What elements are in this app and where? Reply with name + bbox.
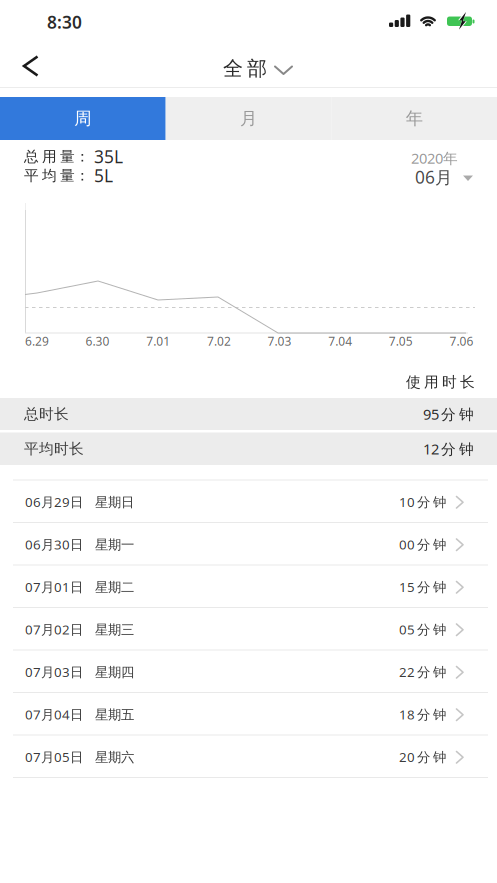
staticText: 平 均 量：	[24, 166, 94, 184]
staticText: 7.06	[449, 333, 473, 349]
staticText: 07月01日 星期二	[25, 578, 134, 596]
staticText: 使 用 时 长	[406, 373, 475, 391]
staticText: 35L	[94, 145, 123, 168]
staticText: 07月04日 星期五	[25, 705, 134, 723]
button[interactable]: 月	[166, 97, 331, 140]
staticText: 总时长	[24, 405, 69, 423]
staticText: 12 分 钟	[423, 439, 474, 458]
staticText: 7.05	[389, 333, 413, 349]
staticText: 2020年	[411, 148, 458, 168]
staticText: 总 用 量：	[24, 147, 94, 165]
staticText: 7.04	[328, 333, 352, 349]
staticText: 07月05日 星期六	[25, 748, 134, 766]
staticText: 7.03	[267, 333, 291, 349]
staticText: 22 分 钟	[399, 663, 446, 681]
staticText: 6.30	[86, 333, 110, 349]
button[interactable]: 07月03日 星期四	[0, 650, 497, 693]
staticText: 20 分 钟	[399, 748, 446, 766]
button[interactable]: 年	[331, 97, 497, 140]
staticText: 95 分 钟	[423, 404, 474, 424]
staticText: 6.29	[25, 333, 49, 349]
staticText: 07月02日 星期三	[25, 620, 134, 638]
staticText: 周	[74, 108, 91, 129]
staticText: 07月03日 星期四	[25, 663, 134, 681]
button[interactable]: 07月01日 星期二	[0, 565, 497, 608]
staticText: 00 分 钟	[399, 535, 446, 553]
staticText: 06月29日 星期日	[25, 493, 134, 511]
staticText: 06月	[415, 165, 452, 188]
button[interactable]: 07月04日 星期五	[0, 693, 497, 735]
button[interactable]: 07月05日 星期六	[0, 735, 497, 778]
staticText: 10 分 钟	[399, 493, 446, 511]
staticText: 平均时长	[24, 440, 84, 458]
staticText: 年	[406, 108, 423, 129]
button[interactable]: Back	[0, 44, 52, 88]
button[interactable]: 全 部	[223, 48, 292, 89]
button[interactable]: 周	[0, 97, 166, 140]
staticText: 月	[240, 108, 257, 129]
staticText: 5L	[94, 164, 113, 187]
staticText: 05 分 钟	[399, 620, 446, 638]
staticText: 7.02	[207, 333, 231, 349]
staticText: 18 分 钟	[399, 705, 446, 723]
staticText: 7.01	[146, 333, 170, 349]
button[interactable]: 06月30日 星期一	[0, 523, 497, 565]
button[interactable]: 2020年	[411, 140, 497, 187]
staticText: 06月30日 星期一	[25, 535, 134, 553]
staticText: 全 部	[223, 56, 267, 81]
button[interactable]: 07月02日 星期三	[0, 608, 497, 650]
button[interactable]: 06月29日 星期日	[0, 480, 497, 523]
staticText: 8:30	[47, 10, 82, 33]
staticText: 15 分 钟	[399, 578, 446, 596]
